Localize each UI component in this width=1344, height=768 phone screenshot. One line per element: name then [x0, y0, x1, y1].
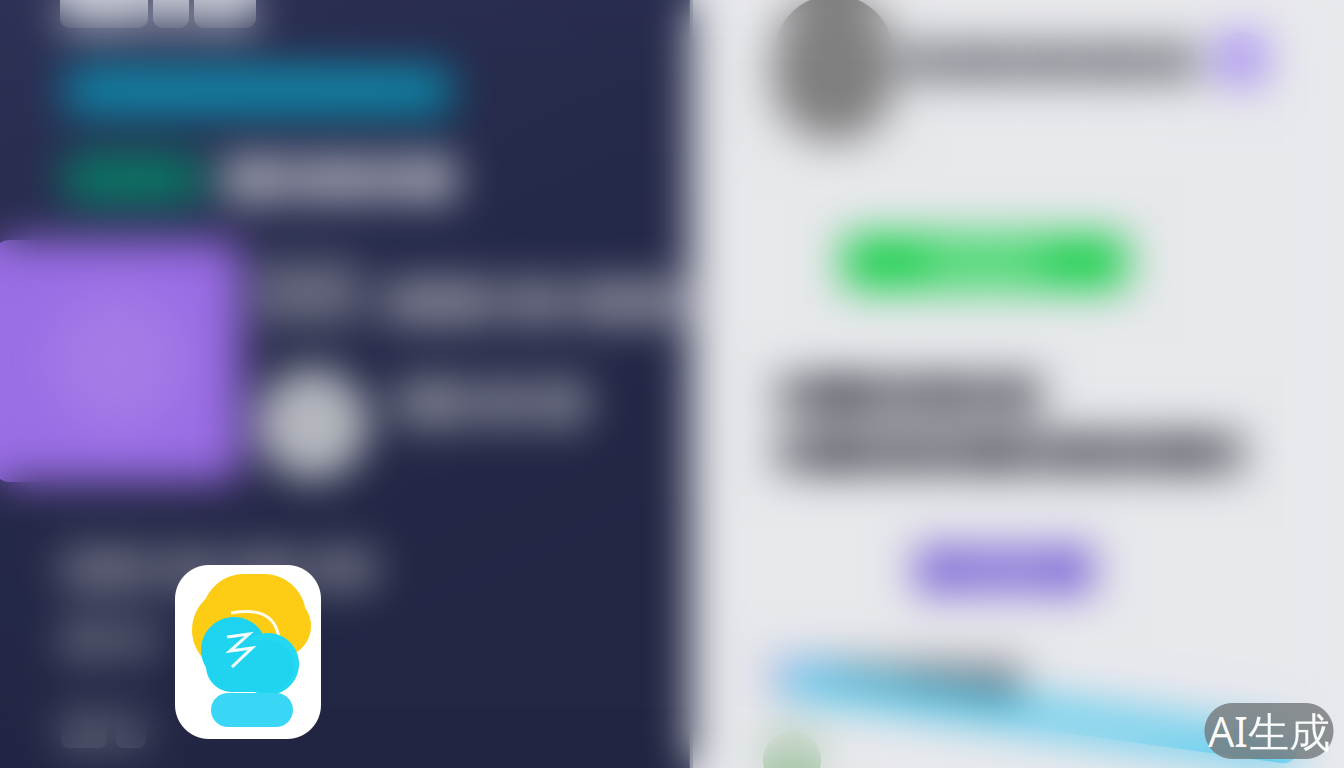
staticText: AI生成 [1208, 703, 1330, 759]
button[interactable]: AI生成 [1204, 703, 1333, 759]
